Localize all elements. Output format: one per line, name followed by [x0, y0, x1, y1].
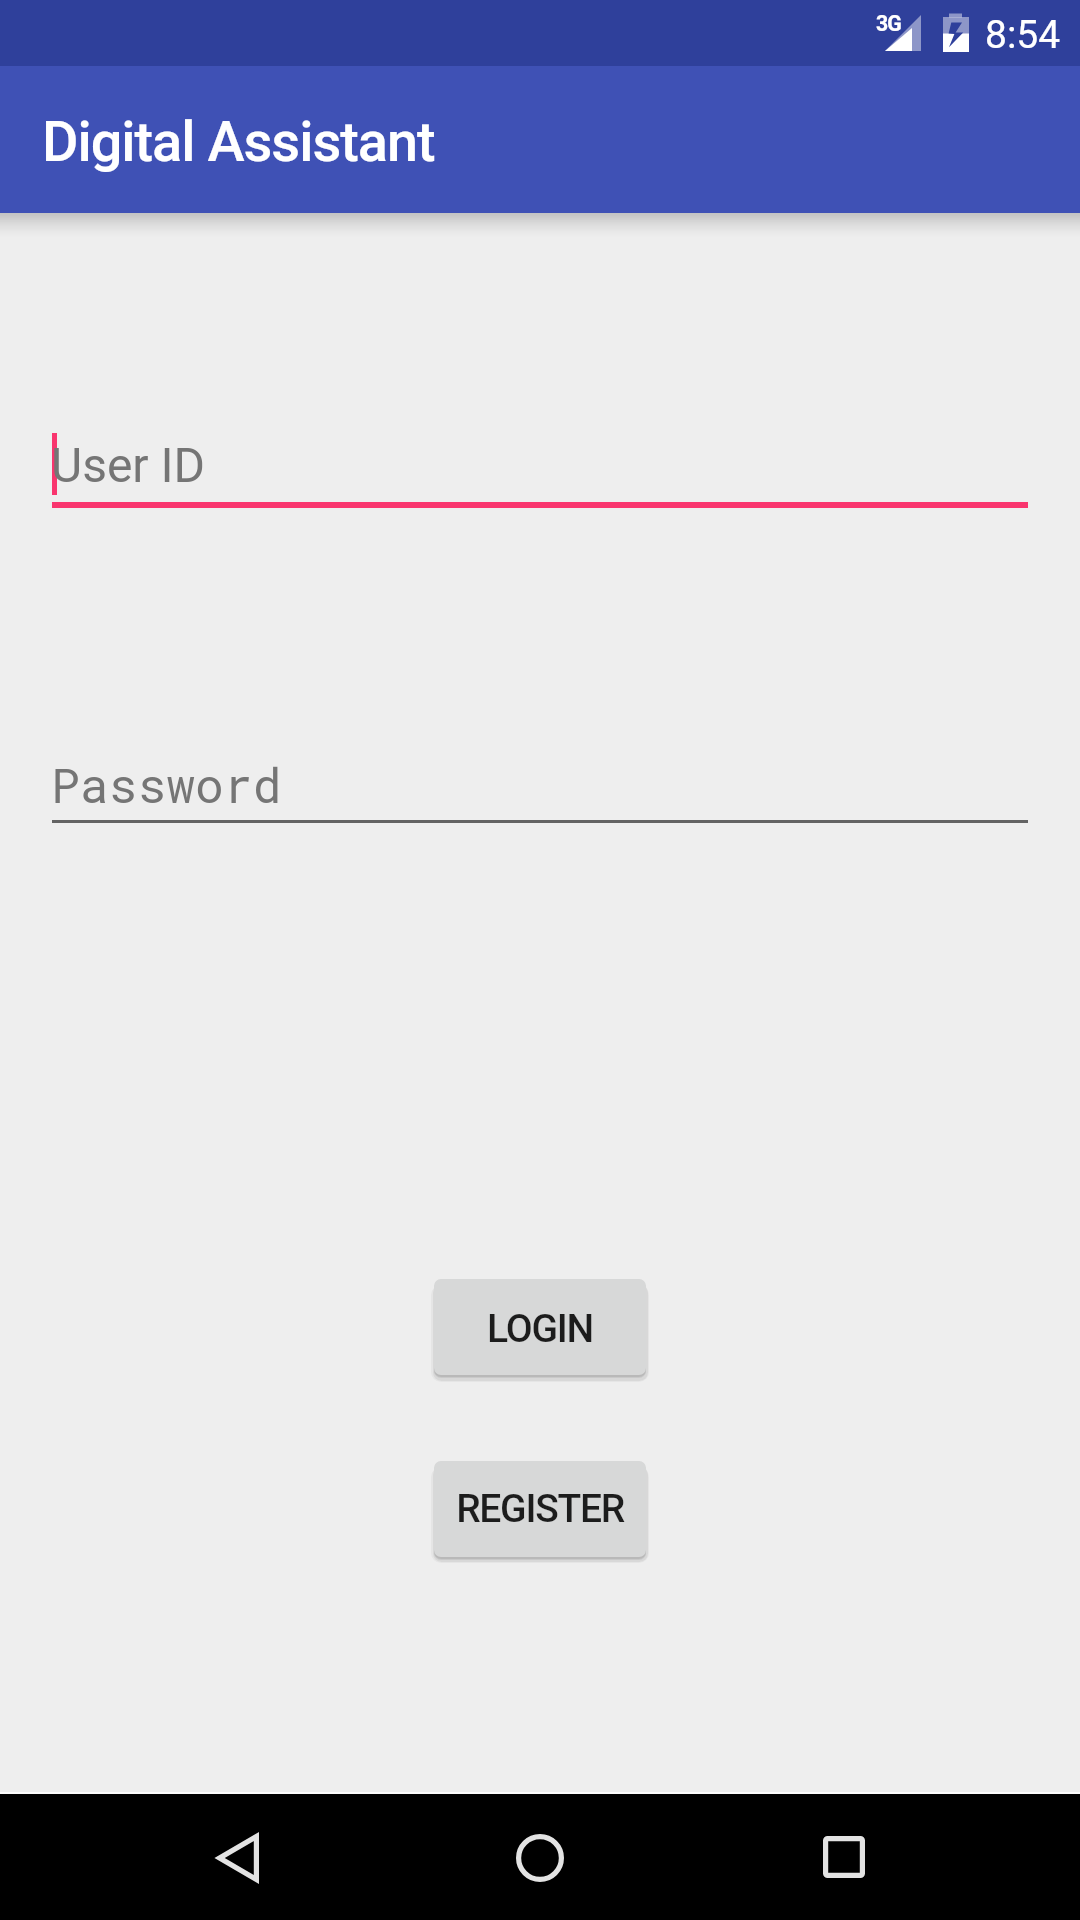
- staticText: User ID: [51, 437, 206, 493]
- button[interactable]: Home: [477, 1794, 603, 1920]
- staticText: LOGIN: [487, 1306, 593, 1352]
- staticText: 8:54: [985, 12, 1061, 58]
- staticText: 3G: [876, 11, 901, 36]
- button[interactable]: Recents: [781, 1794, 907, 1920]
- staticText: Password: [51, 753, 282, 816]
- button[interactable]: LOGIN: [434, 1279, 646, 1375]
- button[interactable]: Password: [0, 737, 1080, 835]
- staticText: Digital Assistant: [42, 109, 435, 174]
- button[interactable]: REGISTER: [434, 1461, 646, 1557]
- button[interactable]: Back: [175, 1794, 301, 1920]
- staticText: REGISTER: [456, 1486, 624, 1532]
- button[interactable]: User ID: [0, 421, 1080, 520]
